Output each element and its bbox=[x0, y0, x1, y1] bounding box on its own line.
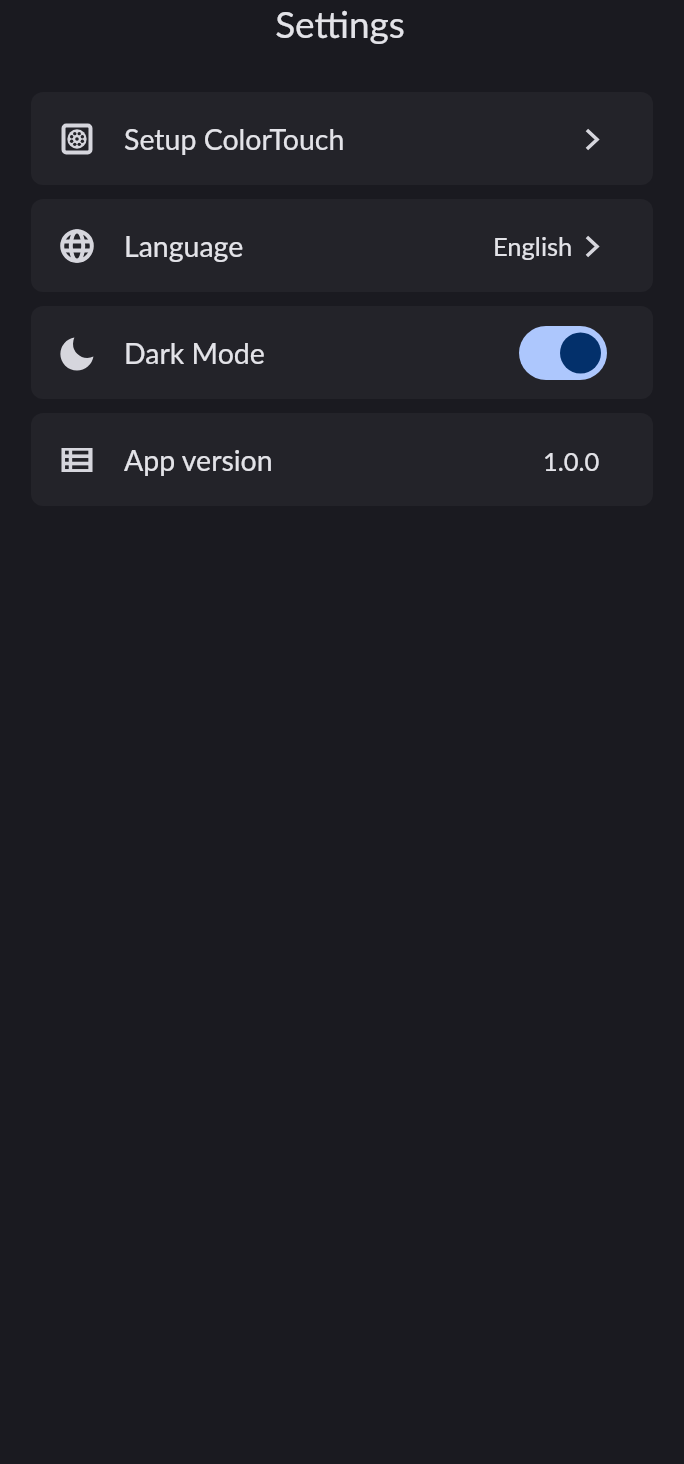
button[interactable]: Language English bbox=[31, 199, 653, 292]
staticText: App version bbox=[124, 443, 273, 477]
staticText: Language bbox=[124, 229, 244, 263]
staticText: Setup ColorTouch bbox=[124, 122, 345, 156]
button[interactable]: Setup ColorTouch bbox=[31, 92, 653, 185]
button[interactable]: Dark Mode bbox=[31, 306, 653, 399]
button[interactable]: App version 1.0.0 bbox=[31, 413, 653, 506]
staticText: Dark Mode bbox=[124, 336, 265, 370]
button[interactable]: Dark Mode toggle, on bbox=[519, 326, 607, 380]
button[interactable]: Open bbox=[585, 199, 653, 292]
staticText: 1.0.0 bbox=[543, 446, 600, 477]
staticText: English bbox=[493, 231, 573, 262]
staticText: Settings bbox=[0, 1, 682, 45]
button[interactable]: Open bbox=[585, 92, 653, 185]
